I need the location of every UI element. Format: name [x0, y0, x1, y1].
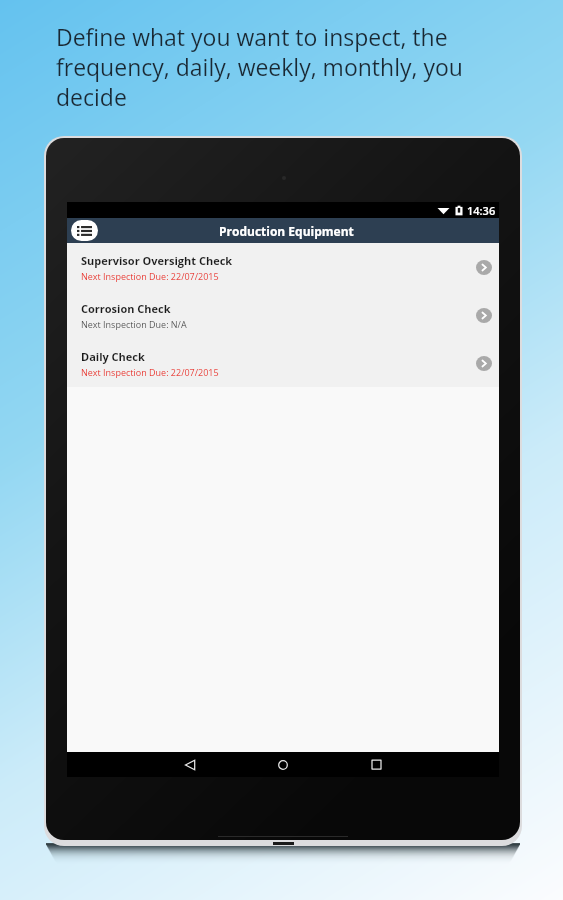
staticText: Next Inspection Due: 22/07/2015: [81, 270, 219, 282]
staticText: 14:36: [467, 203, 496, 218]
staticText: Next Inspection Due: 22/07/2015: [81, 366, 219, 378]
staticText: Corrosion Check: [81, 301, 171, 316]
button[interactable]: Menu: [71, 220, 98, 241]
button[interactable]: Corrosion Check: [67, 291, 499, 339]
staticText: Daily Check: [81, 349, 145, 364]
staticText: Define what you want to inspect, the fre…: [56, 21, 481, 112]
button[interactable]: Daily Check: [67, 339, 499, 387]
staticText: Next Inspection Due: N/A: [81, 318, 187, 330]
staticText: Production Equipment: [219, 223, 354, 239]
staticText: Supervisor Oversight Check: [81, 253, 233, 268]
button[interactable]: Back: [177, 752, 203, 777]
button[interactable]: Recents: [363, 752, 389, 777]
button[interactable]: Supervisor Oversight Check: [67, 243, 499, 291]
button[interactable]: Home: [270, 752, 296, 777]
